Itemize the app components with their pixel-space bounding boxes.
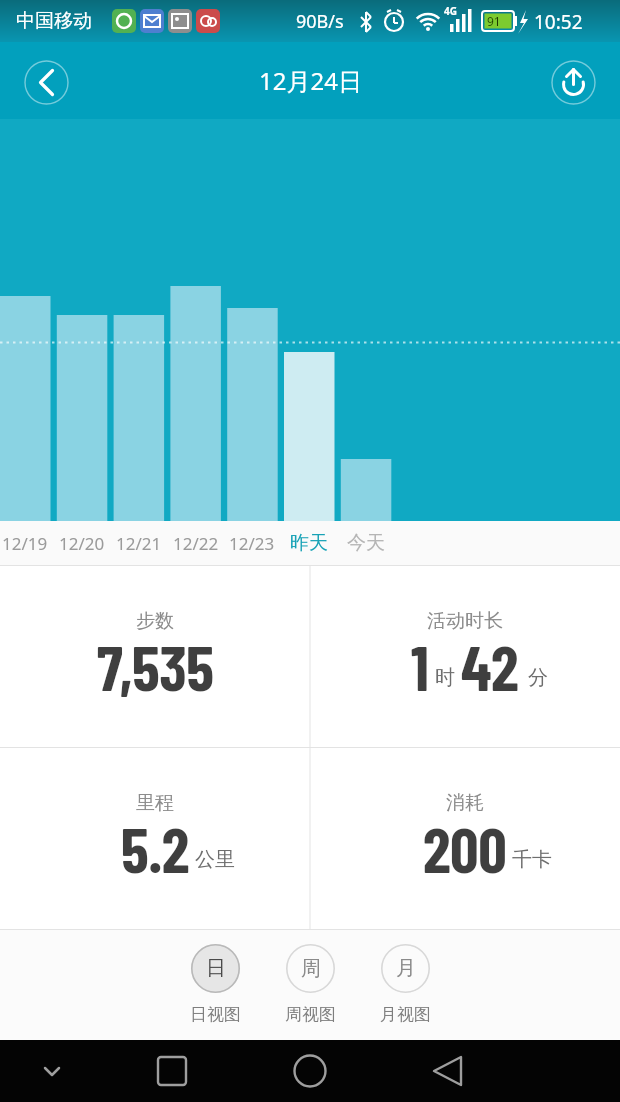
staticText: 中国移动 (16, 9, 92, 33)
staticText: 今天 (347, 531, 385, 555)
staticText: 活动时长 (427, 609, 503, 633)
staticText: 12/19 (2, 532, 48, 555)
staticText: 1 (411, 628, 429, 704)
staticText: 200 (423, 810, 507, 886)
staticText: 周 (301, 956, 321, 981)
button[interactable] (282, 1043, 338, 1099)
staticText: 公里 (195, 847, 235, 872)
button[interactable]: 12/20 (47, 521, 117, 565)
staticText: 日 (206, 956, 226, 981)
button[interactable]: 12/19 (0, 521, 60, 565)
staticText: 12/22 (173, 532, 219, 555)
staticText: 时 (435, 665, 455, 690)
button[interactable]: 周 (265, 944, 355, 1040)
staticText: 42 (461, 628, 519, 704)
button[interactable] (144, 1043, 200, 1099)
staticText: 90B/s (296, 9, 344, 34)
staticText: 12月24日 (259, 64, 362, 97)
staticText: 日视图 (190, 1004, 241, 1025)
staticText: 月 (396, 956, 416, 981)
button[interactable]: 今天 (331, 521, 401, 565)
staticText: 千卡 (512, 847, 552, 872)
staticText: 4G (444, 4, 457, 18)
staticText: 分 (528, 665, 548, 690)
button[interactable] (420, 1043, 476, 1099)
staticText: 步数 (136, 609, 174, 633)
staticText: 12/23 (229, 532, 275, 555)
button[interactable] (24, 1043, 80, 1099)
staticText: 10:52 (534, 9, 583, 35)
staticText: 里程 (136, 791, 174, 815)
button[interactable]: 昨天 (274, 521, 344, 565)
staticText: 7,535 (97, 628, 214, 704)
staticText: 周视图 (285, 1004, 336, 1025)
button[interactable] (551, 60, 596, 105)
button[interactable]: 日 (170, 944, 260, 1040)
staticText: 91 (487, 13, 501, 29)
button[interactable]: 12/23 (217, 521, 287, 565)
button[interactable]: 12/22 (161, 521, 231, 565)
button[interactable] (24, 60, 69, 105)
staticText: 12/20 (59, 532, 105, 555)
staticText: 月视图 (380, 1004, 431, 1025)
staticText: 消耗 (446, 791, 484, 815)
staticText: 昨天 (290, 531, 328, 555)
button[interactable]: 月 (360, 944, 450, 1040)
button[interactable]: 12/21 (104, 521, 174, 565)
staticText: 12/21 (116, 532, 162, 555)
staticText: 5.2 (121, 810, 189, 886)
